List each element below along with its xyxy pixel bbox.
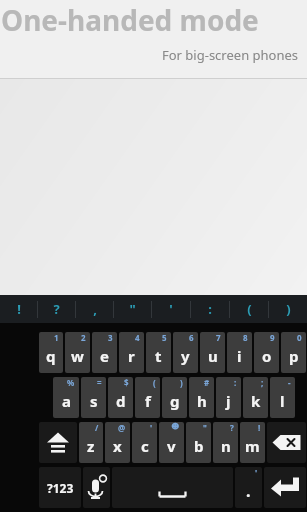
staticText: d — [116, 391, 126, 411]
staticText: One-handed mode — [1, 1, 259, 39]
staticText: , — [93, 300, 97, 318]
button[interactable]: : — [216, 377, 241, 418]
staticText: " — [203, 422, 207, 433]
staticText: ☻ — [171, 422, 180, 431]
staticText: l — [280, 391, 285, 411]
staticText: ' — [150, 422, 153, 433]
staticText: ( — [247, 300, 252, 318]
button[interactable]: 3 — [92, 332, 117, 373]
staticText: / — [95, 422, 99, 433]
staticText: 1 — [54, 332, 59, 343]
staticText: x — [113, 436, 122, 456]
button[interactable]: / — [79, 422, 103, 463]
staticText: 9 — [270, 332, 275, 343]
staticText: t — [155, 346, 162, 366]
button[interactable]: ?123 — [39, 467, 81, 508]
button[interactable]: Enter — [264, 467, 306, 508]
staticText: # — [204, 377, 210, 388]
button[interactable]: Backspace — [267, 422, 306, 463]
staticText: j — [226, 391, 231, 411]
button[interactable]: 6 — [173, 332, 198, 373]
staticText: ' — [255, 467, 258, 478]
staticText: ? — [53, 300, 60, 318]
button[interactable]: " — [114, 295, 151, 323]
staticText: 2 — [81, 332, 86, 343]
staticText: n — [221, 436, 231, 456]
staticText: ' — [169, 300, 173, 318]
staticText: 7 — [216, 332, 221, 343]
staticText: : — [208, 300, 212, 318]
staticText: p — [289, 346, 299, 366]
staticText: 6 — [189, 332, 194, 343]
button[interactable]: = — [81, 377, 106, 418]
staticText: ! — [17, 300, 21, 318]
staticText: 0 — [297, 332, 302, 343]
button[interactable]: 2 — [65, 332, 90, 373]
staticText: i — [237, 346, 242, 366]
button[interactable]: 0 — [281, 332, 306, 373]
staticText: $ — [124, 377, 129, 388]
button[interactable]: ? — [38, 295, 75, 323]
staticText: @ — [118, 422, 126, 433]
staticText: f — [145, 391, 151, 411]
staticText: For big-screen phones — [162, 46, 299, 64]
button[interactable]: : — [191, 295, 229, 323]
button[interactable]: Shift — [39, 422, 77, 463]
staticText: ( — [153, 377, 156, 388]
staticText: y — [181, 346, 190, 366]
staticText: s — [90, 391, 98, 411]
button[interactable]: - — [270, 377, 295, 418]
staticText: - — [288, 377, 291, 388]
button[interactable]: ! — [0, 295, 37, 323]
button[interactable]: @ — [105, 422, 130, 463]
button[interactable]: # — [189, 377, 214, 418]
button[interactable]: ' — [152, 295, 190, 323]
staticText: o — [262, 346, 272, 366]
button[interactable]: Voice input — [83, 467, 110, 508]
button[interactable]: $ — [108, 377, 133, 418]
button[interactable]: ; — [243, 377, 268, 418]
button[interactable]: 4 — [119, 332, 144, 373]
staticText: " — [129, 300, 136, 318]
staticText: r — [128, 346, 135, 366]
staticText: k — [251, 391, 261, 411]
staticText: h — [197, 391, 207, 411]
staticText: v — [167, 436, 176, 456]
staticText: ) — [286, 300, 291, 318]
staticText: . — [246, 480, 251, 502]
staticText: c — [141, 436, 149, 456]
staticText: e — [100, 346, 109, 366]
button[interactable]: 1 — [39, 332, 63, 373]
button[interactable]: 5 — [146, 332, 171, 373]
button[interactable]: ' — [132, 422, 157, 463]
button[interactable]: 9 — [254, 332, 279, 373]
staticText: ?123 — [47, 480, 74, 496]
button[interactable]: " — [186, 422, 211, 463]
staticText: : — [234, 377, 237, 388]
staticText: % — [67, 377, 75, 388]
button[interactable]: 7 — [200, 332, 225, 373]
staticText: g — [170, 391, 180, 411]
button[interactable]: 8 — [227, 332, 252, 373]
button[interactable]: ' — [235, 467, 262, 508]
button[interactable]: , — [76, 295, 113, 323]
button[interactable]: % — [53, 377, 79, 418]
staticText: m — [245, 436, 260, 456]
button[interactable]: ) — [162, 377, 187, 418]
staticText: q — [46, 346, 56, 366]
staticText: ; — [261, 377, 264, 388]
button[interactable]: ( — [135, 377, 160, 418]
button[interactable]: ) — [269, 295, 307, 323]
staticText: u — [208, 346, 218, 366]
staticText: ! — [258, 422, 261, 433]
staticText: 3 — [108, 332, 113, 343]
button[interactable]: ☻ — [159, 422, 184, 463]
staticText: 5 — [162, 332, 167, 343]
button[interactable]: Space — [112, 467, 233, 508]
staticText: ) — [180, 377, 183, 388]
staticText: z — [87, 436, 95, 456]
button[interactable]: ! — [240, 422, 265, 463]
staticText: b — [194, 436, 204, 456]
button[interactable]: ( — [230, 295, 268, 323]
button[interactable]: ? — [213, 422, 238, 463]
